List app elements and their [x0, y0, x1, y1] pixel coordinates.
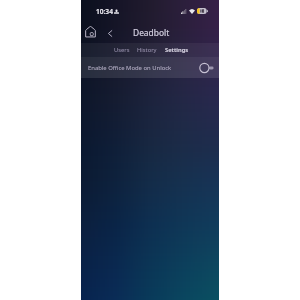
staticText: History [137, 46, 157, 54]
button[interactable]: Users [112, 43, 132, 57]
staticText: Deadbolt [133, 27, 170, 38]
button[interactable]: Home [81, 22, 99, 40]
button[interactable]: Back [102, 25, 118, 41]
button[interactable]: Settings [163, 43, 191, 57]
button[interactable]: Enable Office Mode on Unlock [81, 57, 219, 78]
staticText: 10:34 [96, 7, 113, 16]
staticText: Users [114, 46, 130, 54]
button[interactable]: History [135, 43, 159, 57]
staticText: Enable Office Mode on Unlock [88, 64, 172, 72]
staticText: Settings [165, 46, 189, 54]
